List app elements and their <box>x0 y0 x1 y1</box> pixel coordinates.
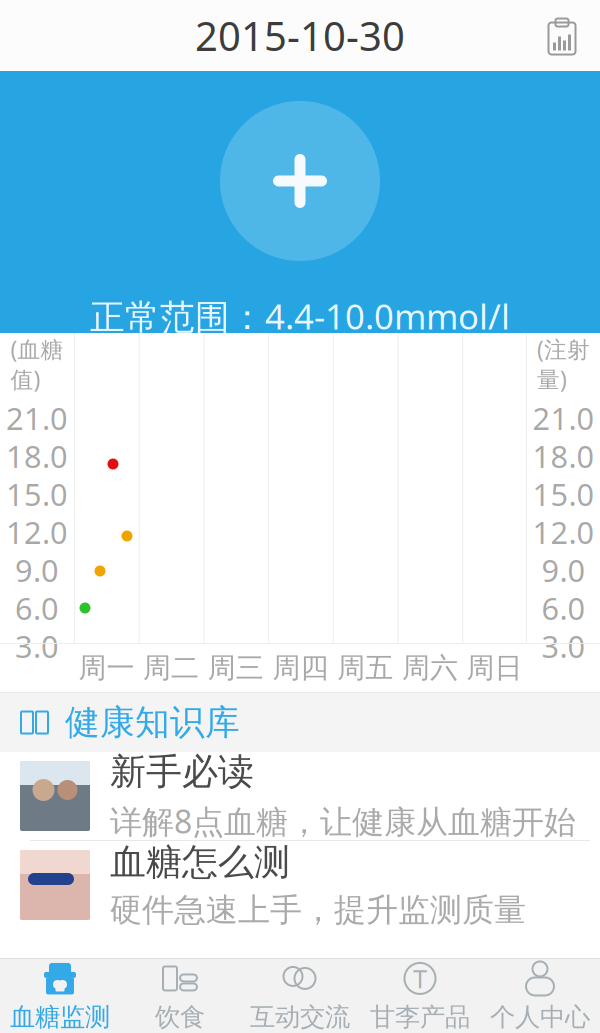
staticText: 个人中心 <box>490 1001 590 1032</box>
staticText: 周五 <box>337 651 393 685</box>
staticText: 周二 <box>143 651 199 685</box>
staticText: 6.0 <box>15 588 59 628</box>
button[interactable]: 血糖怎么测 <box>0 841 600 929</box>
staticText: 饮食 <box>155 1001 205 1032</box>
staticText: 6.0 <box>541 588 585 628</box>
staticText: 9.0 <box>541 550 585 590</box>
staticText: 甘李产品 <box>370 1001 470 1032</box>
staticText: 21.0 <box>532 398 594 438</box>
button[interactable]: 个人中心 <box>480 959 600 1033</box>
staticText: 9.0 <box>15 550 59 590</box>
staticText: 正常范围：4.4-10.0mmol/l <box>90 293 510 339</box>
staticText: 互动交流 <box>250 1001 350 1032</box>
staticText: 15.0 <box>532 474 594 514</box>
staticText: 详解8点血糖，让健康从血糖开始 <box>110 800 576 842</box>
staticText: 周六 <box>402 651 458 685</box>
staticText: 周一 <box>78 651 134 685</box>
staticText: 18.0 <box>532 436 594 476</box>
staticText: (血糖值) <box>10 334 63 394</box>
staticText: 18.0 <box>6 436 68 476</box>
staticText: 12.0 <box>532 512 594 552</box>
staticText: 新手必读 <box>110 750 254 794</box>
staticText: T <box>413 962 427 995</box>
button[interactable]: 饮食 <box>120 959 240 1033</box>
staticText: 15.0 <box>6 474 68 514</box>
staticText: 健康知识库 <box>65 701 240 744</box>
button[interactable]: 新手必读 <box>0 752 600 840</box>
button[interactable]: 血糖报告 <box>530 3 594 67</box>
button[interactable]: T <box>360 959 480 1033</box>
staticText: 血糖怎么测 <box>110 840 290 884</box>
staticText: 2015-10-30 <box>195 9 405 62</box>
staticText: 周日 <box>467 651 523 685</box>
button[interactable]: 添加血糖记录 <box>220 101 380 261</box>
staticText: 3.0 <box>15 626 59 666</box>
button[interactable]: 血糖监测 <box>0 959 120 1033</box>
button[interactable]: 互动交流 <box>240 959 360 1033</box>
staticText: 21.0 <box>6 398 68 438</box>
staticText: 血糖监测 <box>10 1001 110 1032</box>
staticText: (注射量) <box>537 334 590 394</box>
staticText: 周四 <box>272 651 328 685</box>
staticText: 硬件急速上手，提升监测质量 <box>110 890 526 930</box>
staticText: 3.0 <box>541 626 585 666</box>
staticText: 周三 <box>208 651 264 685</box>
staticText: 12.0 <box>6 512 68 552</box>
